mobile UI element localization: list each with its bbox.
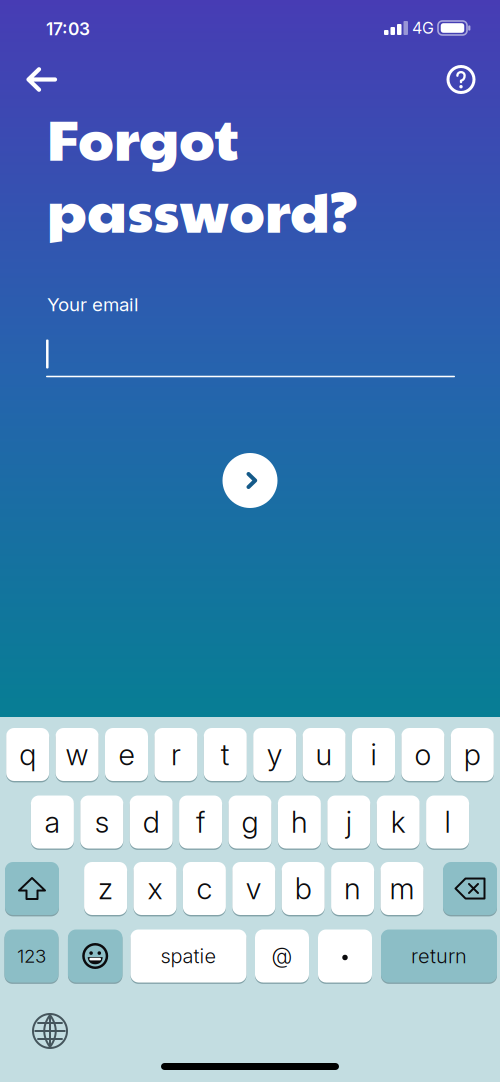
button[interactable]: a (31, 794, 74, 849)
staticText: j (346, 805, 352, 839)
button[interactable]: c (183, 861, 226, 916)
staticText: l (445, 805, 451, 839)
button[interactable]: s (80, 794, 123, 849)
button[interactable]: e (105, 727, 148, 782)
button[interactable]: b (282, 861, 325, 916)
staticText: password? (47, 169, 357, 249)
staticText: Forgot (47, 97, 239, 177)
button[interactable]: 123 (4, 928, 58, 983)
staticText: 17:03 (46, 19, 90, 39)
staticText: f (196, 805, 205, 839)
staticText: e (118, 737, 134, 772)
button[interactable]: q (6, 727, 49, 782)
staticText: 4G (412, 19, 434, 37)
staticText: c (196, 871, 212, 906)
staticText: h (291, 805, 308, 839)
staticText: return (411, 944, 467, 968)
button[interactable]: return (381, 928, 497, 983)
button[interactable]: f (179, 794, 222, 849)
staticText: k (391, 805, 406, 839)
button[interactable]: Help (441, 59, 481, 99)
button[interactable]: Back (20, 57, 64, 101)
button[interactable]: g (228, 794, 271, 849)
button[interactable]: k (377, 794, 420, 849)
button[interactable]: Next keyboard (28, 1009, 72, 1053)
button[interactable]: . (318, 928, 372, 983)
staticText: d (143, 805, 160, 839)
staticText: z (98, 871, 113, 906)
button[interactable]: n (331, 861, 374, 916)
button[interactable]: p (451, 727, 494, 782)
button[interactable]: d (130, 794, 173, 849)
button[interactable]: l (426, 794, 469, 849)
staticText: o (414, 737, 431, 772)
button[interactable]: x (133, 861, 176, 916)
button[interactable]: @ (255, 928, 309, 983)
staticText: g (241, 805, 258, 839)
button[interactable]: o (401, 727, 444, 782)
staticText: 123 (17, 945, 46, 967)
button[interactable]: Shift (5, 861, 59, 916)
button[interactable]: h (278, 794, 321, 849)
staticText: spatie (160, 944, 216, 968)
staticText: w (66, 737, 89, 772)
button[interactable]: spatie (130, 928, 246, 983)
staticText: t (221, 737, 230, 772)
button[interactable]: w (56, 727, 99, 782)
button[interactable]: j (327, 794, 370, 849)
button[interactable]: z (84, 861, 127, 916)
staticText: a (44, 805, 60, 839)
button[interactable]: y (253, 727, 296, 782)
button[interactable]: Emoji (68, 928, 122, 983)
staticText: q (19, 737, 36, 772)
staticText: p (464, 737, 481, 772)
staticText: x (147, 871, 162, 906)
staticText: v (246, 871, 262, 906)
staticText: Your email (47, 293, 139, 315)
staticText: u (316, 737, 333, 772)
button[interactable]: Next (222, 453, 277, 508)
button[interactable]: v (232, 861, 275, 916)
staticText: @ (271, 943, 292, 969)
button[interactable]: t (204, 727, 247, 782)
staticText: y (267, 737, 283, 772)
staticText: n (344, 871, 361, 906)
staticText: i (370, 737, 376, 772)
button[interactable]: Delete (443, 861, 497, 916)
button[interactable]: i (352, 727, 395, 782)
button[interactable]: m (380, 861, 423, 916)
staticText: m (389, 871, 414, 906)
staticText: s (95, 805, 109, 839)
button[interactable]: u (303, 727, 346, 782)
staticText: r (171, 737, 181, 772)
staticText: b (295, 871, 312, 906)
button[interactable]: r (154, 727, 197, 782)
